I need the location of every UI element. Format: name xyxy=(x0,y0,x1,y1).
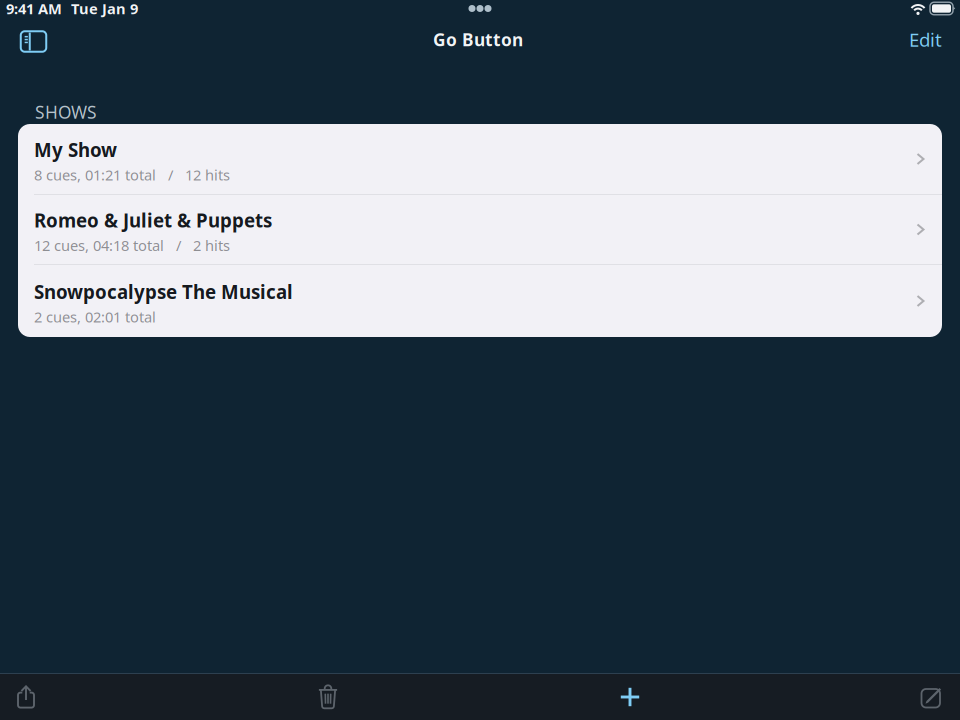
button[interactable]: Compose xyxy=(910,674,954,720)
staticText: 9:41 AM xyxy=(6,0,62,18)
button[interactable]: Share xyxy=(4,674,48,720)
button[interactable]: Add xyxy=(608,674,652,720)
button[interactable]: Delete xyxy=(306,674,350,720)
staticText: Romeo & Juliet & Puppets xyxy=(34,208,272,233)
button[interactable]: Romeo & Juliet & Puppets xyxy=(18,195,942,265)
button[interactable]: Toggle Sidebar xyxy=(0,17,57,62)
staticText: My Show xyxy=(34,137,117,162)
staticText: Tue Jan 9 xyxy=(71,0,138,18)
staticText: Edit xyxy=(909,27,942,52)
staticText: SHOWS xyxy=(35,100,97,123)
staticText: 2 cues, 02:01 total xyxy=(34,307,156,327)
button[interactable]: Snowpocalypse The Musical xyxy=(18,265,942,337)
staticText: Go Button xyxy=(433,28,523,51)
button[interactable]: My Show xyxy=(18,124,942,195)
staticText: Snowpocalypse The Musical xyxy=(34,279,293,304)
staticText: 8 cues, 01:21 total / 12 hits xyxy=(34,165,230,185)
button[interactable]: Edit xyxy=(899,17,960,62)
staticText: 12 cues, 04:18 total / 2 hits xyxy=(34,236,230,255)
